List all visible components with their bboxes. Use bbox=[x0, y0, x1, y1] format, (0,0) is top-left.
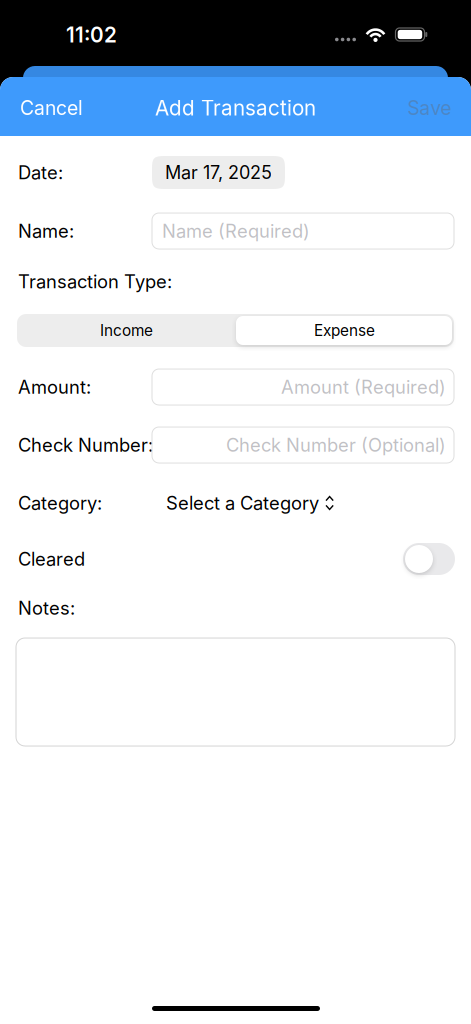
staticText: Check Number (Optional) bbox=[226, 434, 446, 456]
button[interactable]: Check Number (Optional) bbox=[152, 427, 454, 463]
staticText: Amount (Required) bbox=[281, 376, 446, 398]
button[interactable]: Mar 17, 2025 bbox=[152, 156, 285, 189]
staticText: Check Number: bbox=[18, 434, 153, 456]
staticText: Cancel bbox=[20, 96, 83, 120]
staticText: Amount: bbox=[18, 376, 91, 398]
staticText: Name (Required) bbox=[162, 220, 310, 242]
staticText: Date: bbox=[18, 161, 63, 184]
staticText: Mar 17, 2025 bbox=[165, 162, 272, 183]
staticText: Add Transaction bbox=[155, 95, 316, 120]
staticText: Expense bbox=[314, 321, 375, 340]
staticText: Notes: bbox=[18, 597, 75, 619]
button[interactable]: Save bbox=[401, 86, 457, 130]
staticText: Income bbox=[100, 321, 153, 340]
button[interactable]: Income bbox=[17, 314, 235, 347]
staticText: Select a Category bbox=[166, 492, 319, 514]
staticText: Name: bbox=[18, 220, 74, 242]
button[interactable]: Amount (Required) bbox=[152, 369, 454, 405]
staticText: Save bbox=[407, 96, 451, 120]
staticText: Transaction Type: bbox=[18, 270, 172, 293]
button[interactable]: Name (Required) bbox=[152, 213, 454, 249]
staticText: Category: bbox=[18, 492, 102, 514]
button[interactable]: Expense bbox=[235, 314, 453, 347]
button[interactable]: Cleared bbox=[403, 543, 455, 575]
button[interactable]: Notes bbox=[16, 638, 455, 746]
staticText: Cleared bbox=[18, 548, 85, 570]
button[interactable]: Select a Category bbox=[166, 486, 335, 520]
button[interactable]: Cancel bbox=[14, 86, 89, 130]
staticText: 11:02 bbox=[66, 22, 117, 47]
